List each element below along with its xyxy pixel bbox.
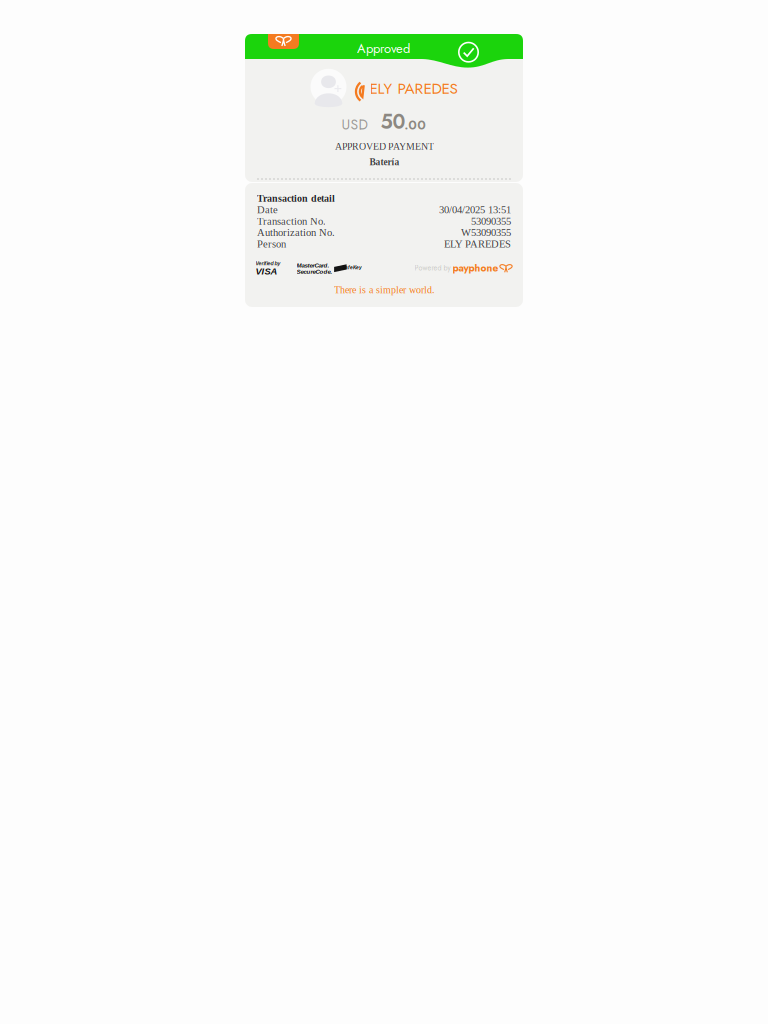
staticText: ELY PAREDES: [369, 77, 457, 100]
staticText: Approved: [357, 39, 410, 58]
staticText: Powered by: [414, 263, 450, 273]
staticText: Person: [257, 238, 286, 250]
staticText: USD: [341, 115, 367, 135]
staticText: Batería: [369, 157, 399, 167]
staticText: MasterCard.: [297, 262, 330, 269]
staticText: 53090355: [471, 215, 511, 227]
staticText: Date: [257, 204, 278, 216]
staticText: payphone: [452, 261, 498, 275]
staticText: Transaction detail: [257, 193, 335, 204]
staticText: Transaction No.: [257, 215, 326, 227]
staticText: Authorization No.: [257, 227, 335, 238]
staticText: .00: [404, 115, 426, 134]
staticText: 50: [380, 107, 405, 136]
staticText: SecureCode.: [297, 268, 333, 275]
staticText: ELY PAREDES: [444, 238, 511, 250]
staticText: There is a simpler world.: [334, 284, 435, 296]
staticText: SafeKey: [342, 265, 362, 270]
staticText: Verified by: [256, 261, 281, 266]
staticText: APPROVED PAYMENT: [335, 141, 434, 152]
staticText: 30/04/2025 13:51: [439, 204, 511, 216]
staticText: VISA: [256, 266, 278, 276]
staticText: W53090355: [461, 227, 511, 238]
